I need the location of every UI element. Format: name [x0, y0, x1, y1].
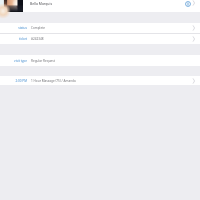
staticText: ticket — [0, 37, 27, 41]
staticText: Complete — [31, 26, 46, 30]
staticText: #242348 — [31, 37, 44, 41]
staticText: 2:00 PM — [0, 79, 27, 83]
button[interactable]: 2:00 PM — [0, 76, 200, 85]
staticText: status — [0, 26, 27, 30]
button[interactable]: Info — [184, 0, 191, 7]
button[interactable]: ticket — [0, 34, 200, 44]
staticText: Bella Marquis — [30, 1, 53, 6]
staticText: Regular Request — [31, 59, 55, 63]
staticText: 1 Hour Massage (75) / Amanda — [31, 79, 76, 83]
button[interactable]: Client photo — [0, 0, 23, 12]
button[interactable]: visit type — [0, 55, 200, 66]
button[interactable]: status — [0, 23, 200, 33]
staticText: visit type — [0, 59, 27, 63]
